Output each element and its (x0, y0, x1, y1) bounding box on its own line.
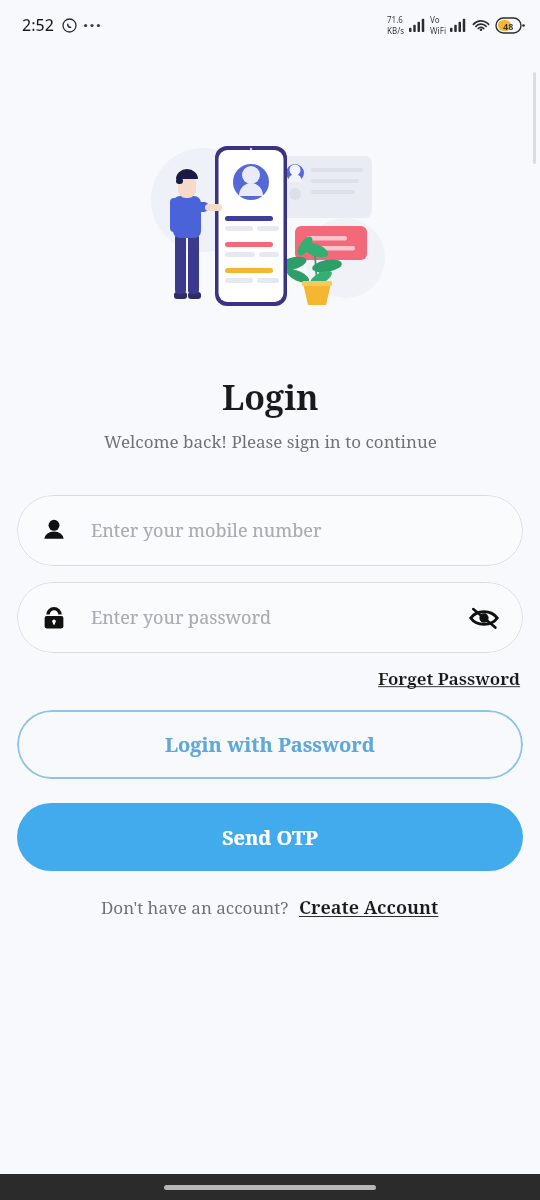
button[interactable]: Forget Password (376, 665, 523, 692)
button[interactable]: Show password (469, 603, 499, 633)
staticText: Enter your password (91, 605, 271, 630)
staticText: Forget Password (378, 667, 521, 690)
staticText: WiFi (430, 25, 447, 36)
button[interactable]: Enter your password (17, 582, 523, 653)
button[interactable]: Login with Password (17, 710, 523, 779)
button[interactable]: Enter your mobile number (17, 495, 523, 566)
staticText: 48 (503, 20, 514, 32)
button[interactable]: Send OTP (17, 803, 523, 871)
staticText: Send OTP (222, 824, 318, 851)
staticText: Vo (430, 14, 440, 25)
staticText: 2:52 (22, 14, 54, 36)
staticText: Login with Password (165, 731, 375, 758)
staticText: Welcome back! Please sign in to continue (104, 430, 437, 453)
staticText: 71.6 (387, 14, 403, 25)
button[interactable]: Create Account (299, 895, 439, 920)
staticText: Don't have an account? (101, 896, 289, 919)
staticText: Create Account (299, 895, 439, 920)
staticText: KB/s (387, 25, 405, 36)
staticText: Enter your mobile number (91, 518, 322, 543)
staticText: Login (222, 374, 319, 420)
